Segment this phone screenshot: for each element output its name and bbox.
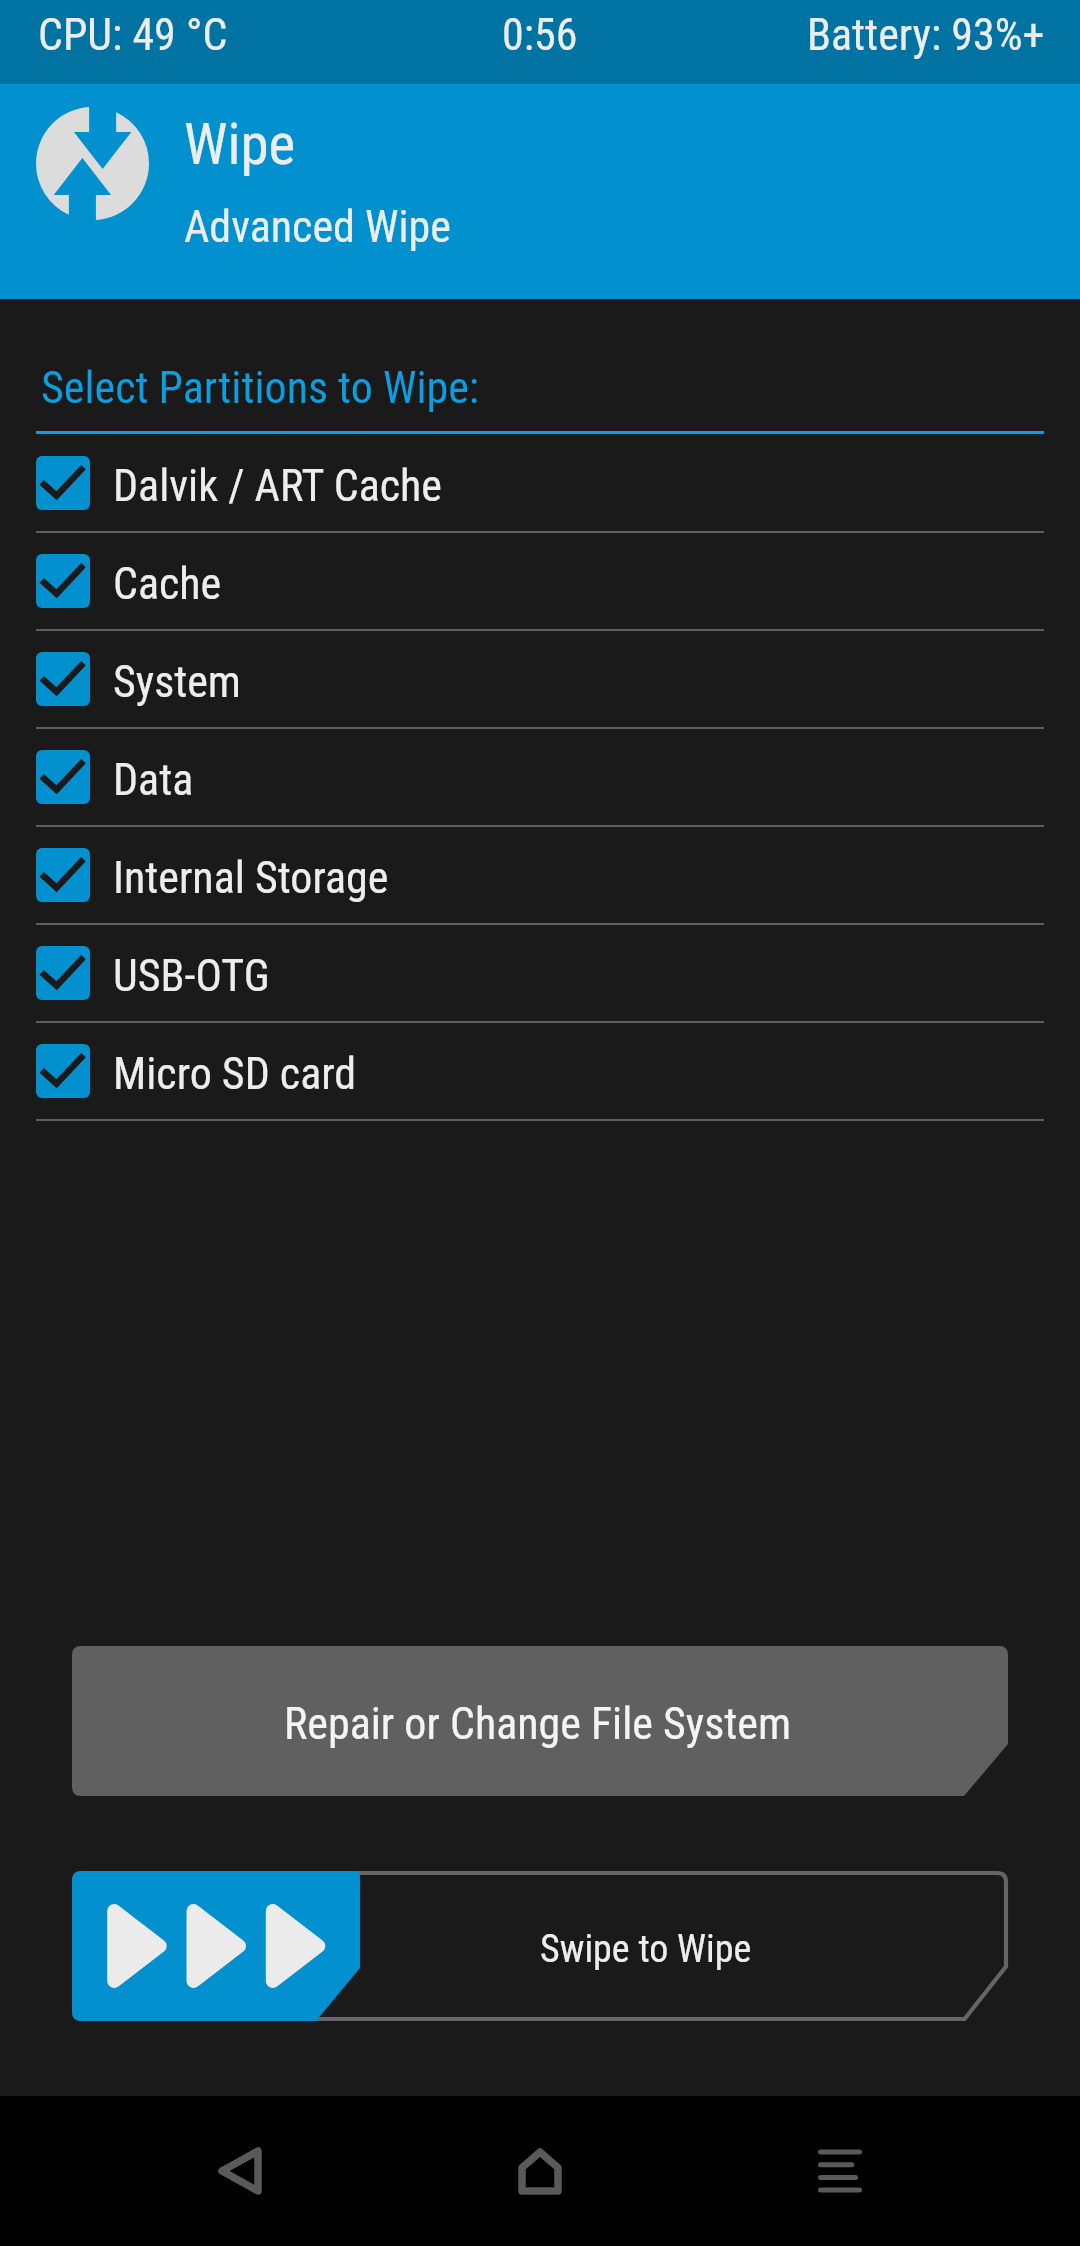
button[interactable]: Menu — [750, 2096, 930, 2246]
button[interactable]: Cache — [0, 533, 1080, 629]
button[interactable]: System — [0, 631, 1080, 727]
button[interactable]: Swipe to Wipe — [72, 1871, 1008, 2021]
button[interactable]: Internal Storage — [0, 827, 1080, 923]
staticText: Wipe — [184, 111, 296, 178]
staticText: CPU: 49 °C — [38, 9, 228, 61]
staticText: Swipe to Wipe — [540, 1927, 752, 1972]
staticText: Select Partitions to Wipe: — [41, 362, 480, 414]
staticText: System — [113, 656, 241, 708]
button[interactable]: Dalvik / ART Cache — [0, 435, 1080, 531]
staticText: Micro SD card — [113, 1048, 357, 1100]
staticText: Repair or Change File System — [284, 1698, 792, 1750]
button[interactable]: Back — [150, 2096, 330, 2246]
button[interactable]: USB-OTG — [0, 925, 1080, 1021]
staticText: Cache — [113, 558, 222, 610]
staticText: Dalvik / ART Cache — [113, 460, 442, 512]
staticText: Data — [113, 754, 194, 806]
staticText: Battery: 93%+ — [807, 9, 1045, 61]
button[interactable]: Data — [0, 729, 1080, 825]
staticText: Internal Storage — [113, 852, 389, 904]
staticText: Advanced Wipe — [184, 201, 451, 253]
button[interactable]: Micro SD card — [0, 1023, 1080, 1119]
button[interactable]: Repair or Change File System — [72, 1646, 1008, 1796]
button[interactable]: Home — [450, 2096, 630, 2246]
staticText: 0:56 — [502, 9, 578, 61]
staticText: USB-OTG — [113, 950, 270, 1002]
